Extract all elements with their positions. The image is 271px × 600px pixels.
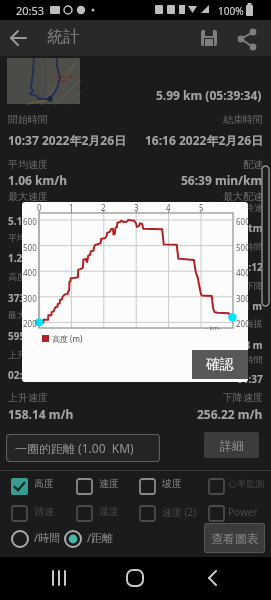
staticText: 坡度 <box>162 477 182 490</box>
button[interactable] <box>11 478 28 495</box>
staticText: – km– <box>205 324 222 332</box>
staticText: 5.18 km/h <box>8 214 58 228</box>
button[interactable] <box>7 58 80 104</box>
button[interactable] <box>234 24 262 52</box>
staticText: 158.14 m/h <box>8 406 74 422</box>
staticText: 600 <box>236 216 248 227</box>
staticText: 256.22 m/h <box>197 406 263 422</box>
button[interactable] <box>139 478 156 495</box>
button[interactable]: 確認 <box>192 350 248 379</box>
button[interactable] <box>0 20 36 56</box>
staticText: 平均速度 <box>8 232 44 243</box>
staticText: 2 <box>101 202 106 213</box>
staticText: 移動時間 <box>227 241 263 252</box>
staticText: 查看圖表 <box>211 531 259 546</box>
button[interactable] <box>196 561 230 595</box>
staticText: 統計 <box>47 27 79 47</box>
staticText: 20:53 <box>16 3 45 18</box>
staticText: 確認 <box>206 356 234 374</box>
staticText: 5 tm <box>240 221 263 235</box>
staticText: 373 m <box>8 291 38 305</box>
staticText: 5 <box>199 202 204 213</box>
staticText: 100% <box>218 4 244 18</box>
button[interactable] <box>11 505 28 522</box>
staticText: 500 <box>23 242 37 253</box>
button[interactable] <box>139 505 156 522</box>
staticText: 56:39 min/km <box>181 172 263 188</box>
staticText: 時速 <box>245 202 263 213</box>
staticText: 下降時間 <box>227 354 263 365</box>
staticText: 4 <box>166 202 171 213</box>
staticText: 02:55 <box>8 368 34 382</box>
staticText: 1.06 km/h <box>8 172 68 188</box>
staticText: 588 m <box>233 338 263 352</box>
button[interactable] <box>76 505 93 522</box>
button[interactable] <box>42 561 76 595</box>
staticText: /距離 <box>87 530 114 545</box>
staticText: 5.99 km (05:39:34) <box>156 87 262 103</box>
staticText: 0 <box>37 202 42 213</box>
staticText: 05:12 <box>237 260 263 274</box>
staticText: 16:16 2022年2月26日 <box>145 132 263 148</box>
staticText: 踏速 <box>34 505 54 518</box>
staticText: 最大配速 <box>223 190 263 203</box>
button[interactable]: 查看圖表 <box>204 523 265 553</box>
staticText: 300 <box>236 293 248 304</box>
button[interactable] <box>118 561 152 595</box>
staticText: 595 m <box>8 329 38 343</box>
staticText: 最大速度 <box>8 190 48 203</box>
staticText: 10:37 2022年2月26日 <box>8 132 126 148</box>
staticText: /時間 <box>34 530 61 545</box>
staticText: 速度 (2) <box>162 505 197 519</box>
staticText: 下降速度 <box>223 391 263 404</box>
staticText: 400 <box>23 267 37 278</box>
staticText: 速度 <box>99 477 119 490</box>
staticText: 心率監測 <box>228 478 264 489</box>
staticText: 400 <box>236 267 248 278</box>
staticText: 500 <box>236 242 248 253</box>
staticText: 詳細 <box>220 438 244 453</box>
staticText: 高度 (m) <box>52 333 83 344</box>
staticText: 平均速度 <box>8 158 48 171</box>
button[interactable] <box>196 24 224 52</box>
staticText: 海拔下降 <box>227 280 263 291</box>
staticText: 溫度 <box>99 505 119 518</box>
button[interactable]: 詳細 <box>204 432 259 458</box>
staticText: 600 <box>23 216 37 227</box>
staticText: 上升速度 <box>8 391 48 404</box>
staticText: 300 <box>23 293 37 304</box>
button[interactable] <box>11 530 29 548</box>
staticText: 高度差 <box>8 271 35 282</box>
staticText: 最高海拔 <box>227 318 263 329</box>
staticText: 結束時間 <box>223 113 263 126</box>
staticText: 1,251 m <box>224 299 263 313</box>
staticText: Power <box>228 505 258 519</box>
staticText: 3 <box>134 202 139 213</box>
staticText: 200 <box>236 318 248 329</box>
staticText: 開始時間 <box>8 113 48 126</box>
staticText: 1.26 km/h <box>8 251 58 265</box>
button[interactable]: 一圈的距離 (1.00 KM) <box>6 434 160 462</box>
staticText: 最大海拔 <box>8 309 44 320</box>
button[interactable] <box>208 505 225 522</box>
staticText: 200 <box>23 318 37 329</box>
staticText: 配速 <box>243 158 263 171</box>
staticText: 高度 <box>34 477 54 490</box>
staticText: 1 <box>69 202 74 213</box>
staticText: 上升時間 <box>8 349 44 360</box>
button[interactable] <box>64 530 82 548</box>
staticText: 一圈的距離 (1.00 KM) <box>15 440 134 456</box>
staticText: 01:37 <box>237 372 263 386</box>
button[interactable] <box>208 478 225 495</box>
button[interactable] <box>76 478 93 495</box>
